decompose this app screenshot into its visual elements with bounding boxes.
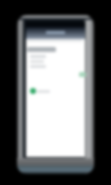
button[interactable] <box>26 27 85 39</box>
